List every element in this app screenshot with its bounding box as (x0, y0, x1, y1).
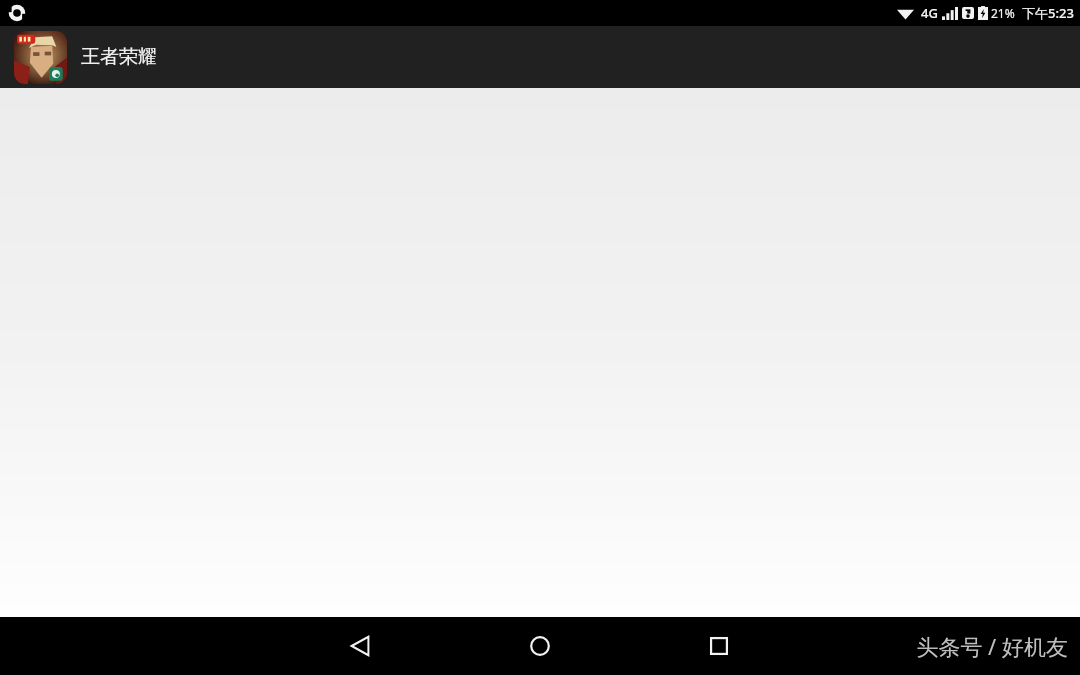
button[interactable]: Home (0, 617, 1080, 675)
button[interactable]: 王者荣耀 app icon (0, 26, 1080, 88)
staticText: 21% (991, 5, 1015, 21)
other: 王者荣耀 app icon (14, 31, 67, 84)
staticText: 4G (921, 4, 938, 22)
staticText: 下午5:23 (1022, 4, 1074, 22)
staticText: 王者荣耀 (81, 45, 157, 69)
button[interactable]: Recents (179, 617, 1080, 675)
button[interactable]: Back (0, 617, 900, 675)
staticText: 头条号 / 好机友 (916, 631, 1068, 661)
